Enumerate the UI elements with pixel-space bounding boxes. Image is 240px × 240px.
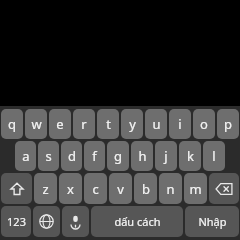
button[interactable]: Shift <box>1 173 32 204</box>
button[interactable]: Voice input <box>62 206 89 237</box>
button[interactable]: i <box>169 109 191 139</box>
button[interactable]: r <box>73 109 95 139</box>
button[interactable]: Change language <box>33 206 60 237</box>
button[interactable]: p <box>217 109 239 139</box>
button[interactable]: g <box>107 141 129 171</box>
staticText: m <box>189 180 202 198</box>
staticText: j <box>164 147 168 165</box>
staticText: dấu cách <box>114 214 161 229</box>
button[interactable]: Backspace <box>209 173 239 204</box>
button[interactable]: l <box>203 141 225 171</box>
button[interactable]: v <box>109 173 132 204</box>
staticText: o <box>200 115 208 133</box>
button[interactable]: 123 <box>1 206 31 237</box>
button[interactable]: b <box>134 173 157 204</box>
button[interactable]: s <box>38 141 59 171</box>
staticText: n <box>166 180 175 198</box>
staticText: k <box>187 147 194 165</box>
button[interactable]: t <box>97 109 119 139</box>
staticText: l <box>212 147 216 165</box>
staticText: s <box>45 147 52 165</box>
staticText: 123 <box>7 214 26 229</box>
button[interactable]: w <box>25 109 47 139</box>
button[interactable]: n <box>159 173 182 204</box>
button[interactable]: Nhập <box>185 206 239 237</box>
button[interactable]: k <box>179 141 201 171</box>
button[interactable]: y <box>121 109 143 139</box>
staticText: b <box>142 180 150 198</box>
staticText: i <box>178 115 182 133</box>
button[interactable]: u <box>145 109 167 139</box>
staticText: w <box>31 115 42 133</box>
staticText: t <box>106 115 111 133</box>
button[interactable]: a <box>15 141 36 171</box>
staticText: g <box>114 147 122 165</box>
staticText: z <box>42 180 49 198</box>
button[interactable]: o <box>193 109 215 139</box>
staticText: q <box>8 115 16 133</box>
button[interactable]: dấu cách <box>91 206 183 237</box>
staticText: c <box>92 180 99 198</box>
staticText: e <box>56 115 64 133</box>
button[interactable]: e <box>49 109 71 139</box>
button[interactable]: j <box>155 141 177 171</box>
staticText: Nhập <box>198 214 227 229</box>
staticText: v <box>117 180 124 198</box>
button[interactable]: x <box>59 173 82 204</box>
staticText: h <box>138 147 147 165</box>
staticText: d <box>68 147 76 165</box>
button[interactable]: q <box>1 109 23 139</box>
button[interactable]: d <box>61 141 82 171</box>
button[interactable]: m <box>184 173 207 204</box>
staticText: r <box>81 115 87 133</box>
staticText: x <box>67 180 74 198</box>
button[interactable]: f <box>84 141 105 171</box>
button[interactable]: z <box>34 173 57 204</box>
staticText: p <box>224 115 232 133</box>
button[interactable]: h <box>131 141 153 171</box>
button[interactable]: c <box>84 173 107 204</box>
staticText: f <box>92 147 97 165</box>
staticText: a <box>22 147 30 165</box>
staticText: u <box>152 115 161 133</box>
staticText: y <box>129 115 136 133</box>
